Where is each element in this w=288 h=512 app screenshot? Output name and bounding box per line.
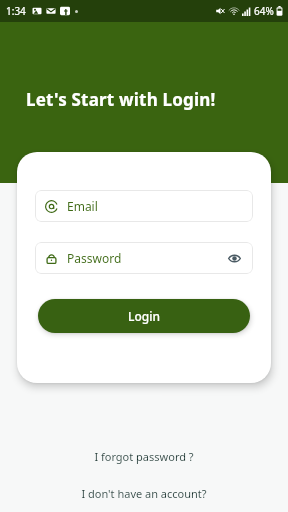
button[interactable]: Email xyxy=(35,190,253,222)
staticText: Email xyxy=(67,198,98,214)
button[interactable]: Show password xyxy=(225,249,243,267)
staticText: 64% xyxy=(254,4,274,18)
staticText: I don't have an account? xyxy=(81,486,207,501)
staticText: Password xyxy=(67,250,122,266)
button[interactable]: Password xyxy=(35,242,253,274)
button[interactable]: I don't have an account? xyxy=(73,483,215,504)
staticText: Let's Start with Login! xyxy=(26,88,216,111)
staticText: I forgot password ? xyxy=(94,449,194,464)
staticText: Login xyxy=(128,308,160,324)
button[interactable]: I forgot password ? xyxy=(86,446,202,467)
staticText: 1:34 xyxy=(6,4,26,18)
button[interactable]: Login xyxy=(38,299,250,333)
